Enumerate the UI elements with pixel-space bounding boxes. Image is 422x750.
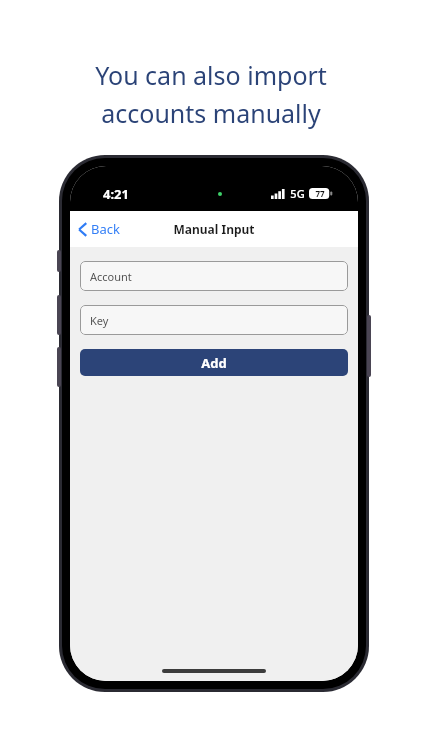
staticText: Manual Input bbox=[173, 221, 255, 237]
staticText: Key bbox=[90, 313, 109, 328]
staticText: accounts manually bbox=[101, 96, 321, 130]
button[interactable]: Back bbox=[70, 214, 130, 244]
staticText: Account bbox=[90, 269, 132, 284]
other: Battery 77 percent bbox=[309, 188, 332, 199]
staticText: 4:21 bbox=[103, 185, 129, 203]
staticText: You can also import bbox=[95, 58, 327, 92]
button[interactable]: Add bbox=[80, 349, 348, 376]
staticText: 77 bbox=[315, 188, 325, 199]
button[interactable]: Key bbox=[80, 305, 348, 335]
other: Cellular signal bbox=[271, 189, 285, 199]
staticText: 5G bbox=[290, 186, 305, 201]
staticText: Back bbox=[91, 220, 120, 238]
button[interactable]: Account bbox=[80, 261, 348, 291]
staticText: Add bbox=[201, 354, 227, 372]
